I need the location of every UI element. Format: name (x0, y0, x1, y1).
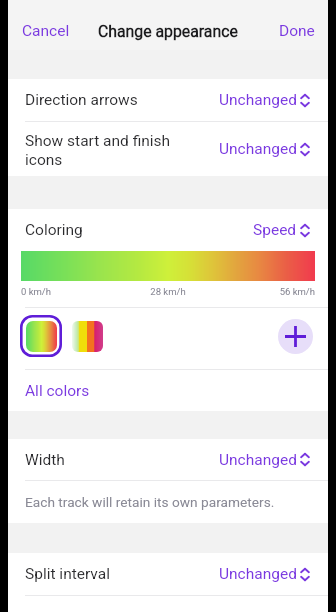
button[interactable]: Alternative palette (72, 321, 103, 352)
other: Change value (300, 94, 310, 107)
staticText: 28 km/h (119, 286, 217, 297)
button[interactable]: All colors (8, 370, 328, 411)
staticText: Show start and finish icons (25, 132, 175, 169)
other: Change value (300, 568, 310, 581)
other: Change value (300, 224, 310, 237)
staticText: Change appearance (98, 22, 238, 41)
button[interactable]: Width (8, 439, 328, 480)
staticText: Each track will retain its own parameter… (25, 494, 275, 510)
staticText: Split interval (25, 565, 219, 583)
other: Change value (300, 453, 310, 466)
staticText: Direction arrows (25, 91, 219, 109)
other: Change value (300, 143, 310, 156)
button[interactable]: Coloring (8, 209, 328, 251)
staticText: Coloring (25, 221, 253, 239)
button[interactable]: Show start and finish icons (8, 122, 328, 176)
staticText: Unchanged (219, 91, 297, 109)
button[interactable]: Done (269, 17, 328, 45)
button[interactable]: Split interval (8, 553, 328, 595)
button[interactable]: Add palette (278, 319, 313, 354)
staticText: 56 km/h (217, 286, 315, 297)
staticText: Unchanged (219, 451, 297, 469)
button[interactable]: Cancel (8, 17, 80, 45)
staticText: Unchanged (219, 140, 297, 158)
button[interactable]: Direction arrows (8, 79, 328, 121)
staticText: Width (25, 451, 219, 469)
staticText: 0 km/h (21, 286, 119, 297)
button[interactable]: Speed palette, selected (20, 315, 62, 357)
staticText: Unchanged (219, 565, 297, 583)
staticText: All colors (25, 382, 90, 400)
staticText: Speed (253, 221, 297, 239)
